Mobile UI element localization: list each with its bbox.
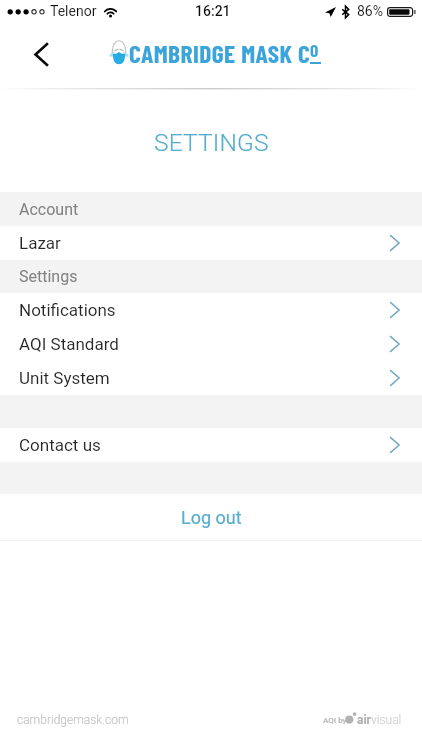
staticText: Settings (19, 267, 78, 286)
button[interactable]: Lazar (0, 226, 422, 260)
staticText: AQI by (323, 716, 347, 725)
staticText: air (357, 713, 371, 727)
staticText: 16:21 (195, 3, 231, 19)
button[interactable]: Contact us (0, 428, 422, 462)
button[interactable]: Back (34, 42, 49, 67)
staticText: Notifications (19, 300, 116, 320)
staticText: AQI Standard (19, 334, 119, 354)
button[interactable]: AQI Standard (0, 327, 422, 361)
staticText: SETTINGS (154, 128, 269, 157)
staticText: Contact us (19, 435, 101, 455)
staticText: Account (19, 200, 79, 219)
staticText: Telenor (50, 3, 97, 19)
button[interactable]: Notifications (0, 293, 422, 327)
staticText: Lazar (19, 233, 61, 253)
staticText: CAMBRIDGE MASK C (129, 37, 311, 68)
staticText: 86% (357, 3, 383, 19)
staticText: Unit System (19, 368, 110, 388)
staticText: cambridgemask.com (17, 713, 129, 727)
staticText: Log out (181, 507, 242, 528)
button[interactable]: Unit System (0, 361, 422, 395)
button[interactable]: Log out (0, 494, 422, 540)
staticText: visual (371, 713, 402, 727)
staticText: O (310, 39, 319, 60)
